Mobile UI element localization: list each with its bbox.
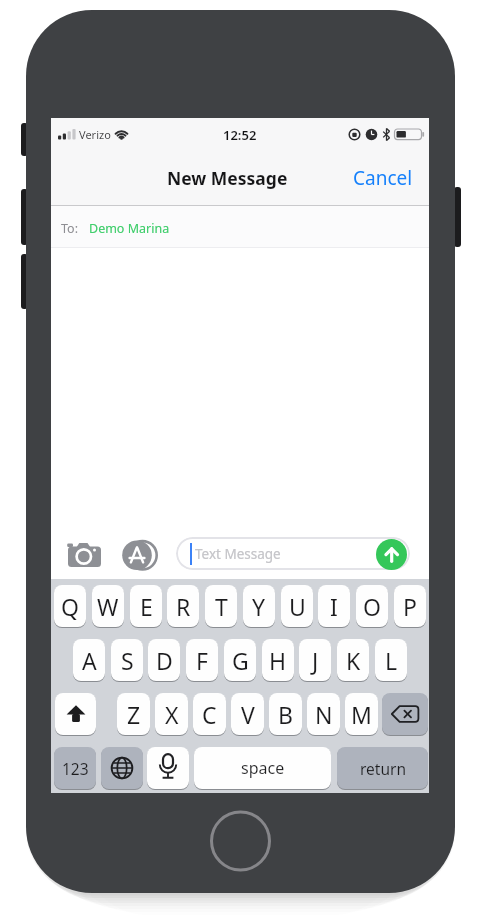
button[interactable]: B [269,693,302,735]
staticText: E [140,591,153,622]
staticText: Demo Marina [89,220,170,237]
button[interactable] [376,539,407,570]
staticText: Verizon [79,127,117,143]
staticText: D [156,645,173,676]
button[interactable]: M [345,693,378,735]
staticText: K [346,645,361,676]
staticText: space [241,757,285,779]
staticText: L [385,645,398,676]
button[interactable]: R [167,585,199,627]
button[interactable] [101,747,143,789]
button[interactable]: G [224,639,256,681]
button[interactable] [147,747,189,789]
button[interactable] [176,537,410,570]
button[interactable]: L [375,639,407,681]
staticText: M [351,699,372,730]
button[interactable]: J [299,639,331,681]
button[interactable]: space [194,747,331,789]
staticText: I [330,591,338,622]
staticText: Q [61,591,79,622]
staticText: Y [252,591,266,622]
button[interactable]: return [337,747,428,789]
button[interactable]: U [281,585,313,627]
staticText: S [121,645,134,676]
staticText: G [232,645,249,676]
staticText: To: [61,220,82,237]
button[interactable]: O [356,585,388,627]
button[interactable]: A [73,639,105,681]
button[interactable]: V [231,693,264,735]
button[interactable]: H [262,639,294,681]
button[interactable]: I [318,585,350,627]
button[interactable]: Y [243,585,275,627]
staticText: 12:52 [223,126,257,144]
staticText: C [202,699,217,730]
button[interactable] [120,539,160,572]
staticText: return [360,758,406,779]
button[interactable]: Q [54,585,86,627]
staticText: B [278,699,293,730]
staticText: F [196,645,208,676]
staticText: J [312,645,319,676]
button[interactable]: D [148,639,180,681]
button[interactable]: F [186,639,218,681]
button[interactable]: X [155,693,188,735]
button[interactable]: Z [117,693,150,735]
button[interactable] [382,693,428,735]
button[interactable]: E [130,585,162,627]
staticText: U [289,591,306,622]
staticText: R [176,591,191,622]
button[interactable] [67,542,103,570]
staticText: Cancel [353,165,413,191]
button[interactable] [55,693,96,735]
staticText: H [269,645,287,676]
button[interactable]: 123 [54,747,96,789]
button[interactable]: S [111,639,143,681]
staticText: O [363,591,381,622]
button[interactable]: P [394,585,426,627]
staticText: A [82,645,97,676]
staticText: P [403,591,417,622]
staticText: W [97,591,119,622]
button[interactable]: N [307,693,340,735]
staticText: Text Message [195,545,281,563]
button[interactable]: To: [61,220,191,237]
staticText: N [315,699,333,730]
staticText: 123 [62,758,89,779]
button[interactable]: T [205,585,237,627]
button[interactable]: K [337,639,369,681]
staticText: T [215,591,228,622]
staticText: New Message [167,166,288,190]
staticText: X [165,699,179,730]
button[interactable]: C [193,693,226,735]
button[interactable]: W [92,585,124,627]
button[interactable]: Cancel [312,164,413,192]
staticText: Z [127,699,141,730]
staticText: V [241,699,255,730]
